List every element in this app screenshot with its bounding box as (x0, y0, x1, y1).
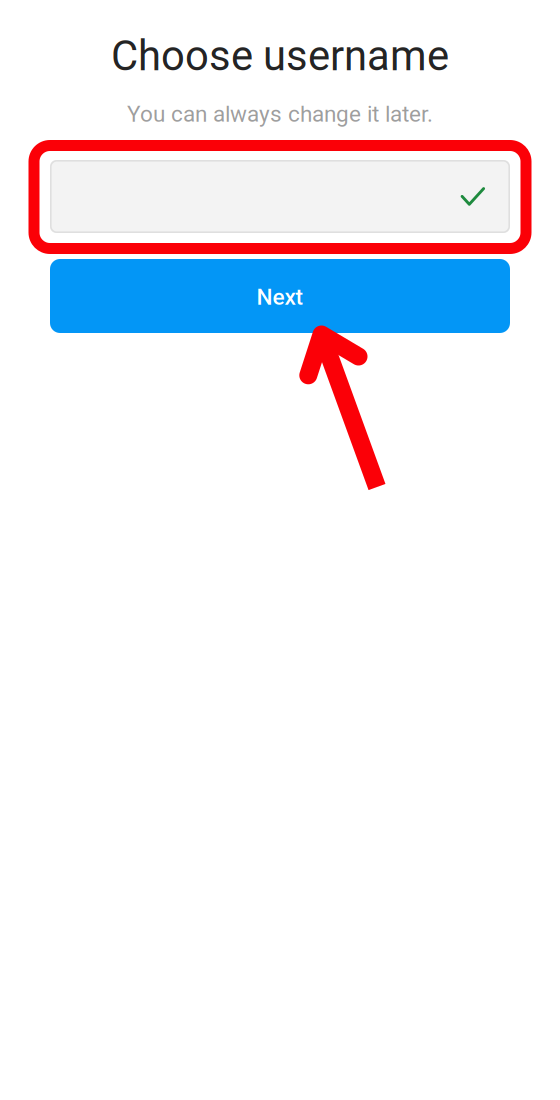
button[interactable]: Username (50, 160, 510, 233)
staticText: Choose username (111, 31, 449, 80)
staticText: You can always change it later. (127, 101, 433, 127)
button[interactable]: Next (50, 259, 510, 333)
staticText: Next (256, 284, 303, 310)
